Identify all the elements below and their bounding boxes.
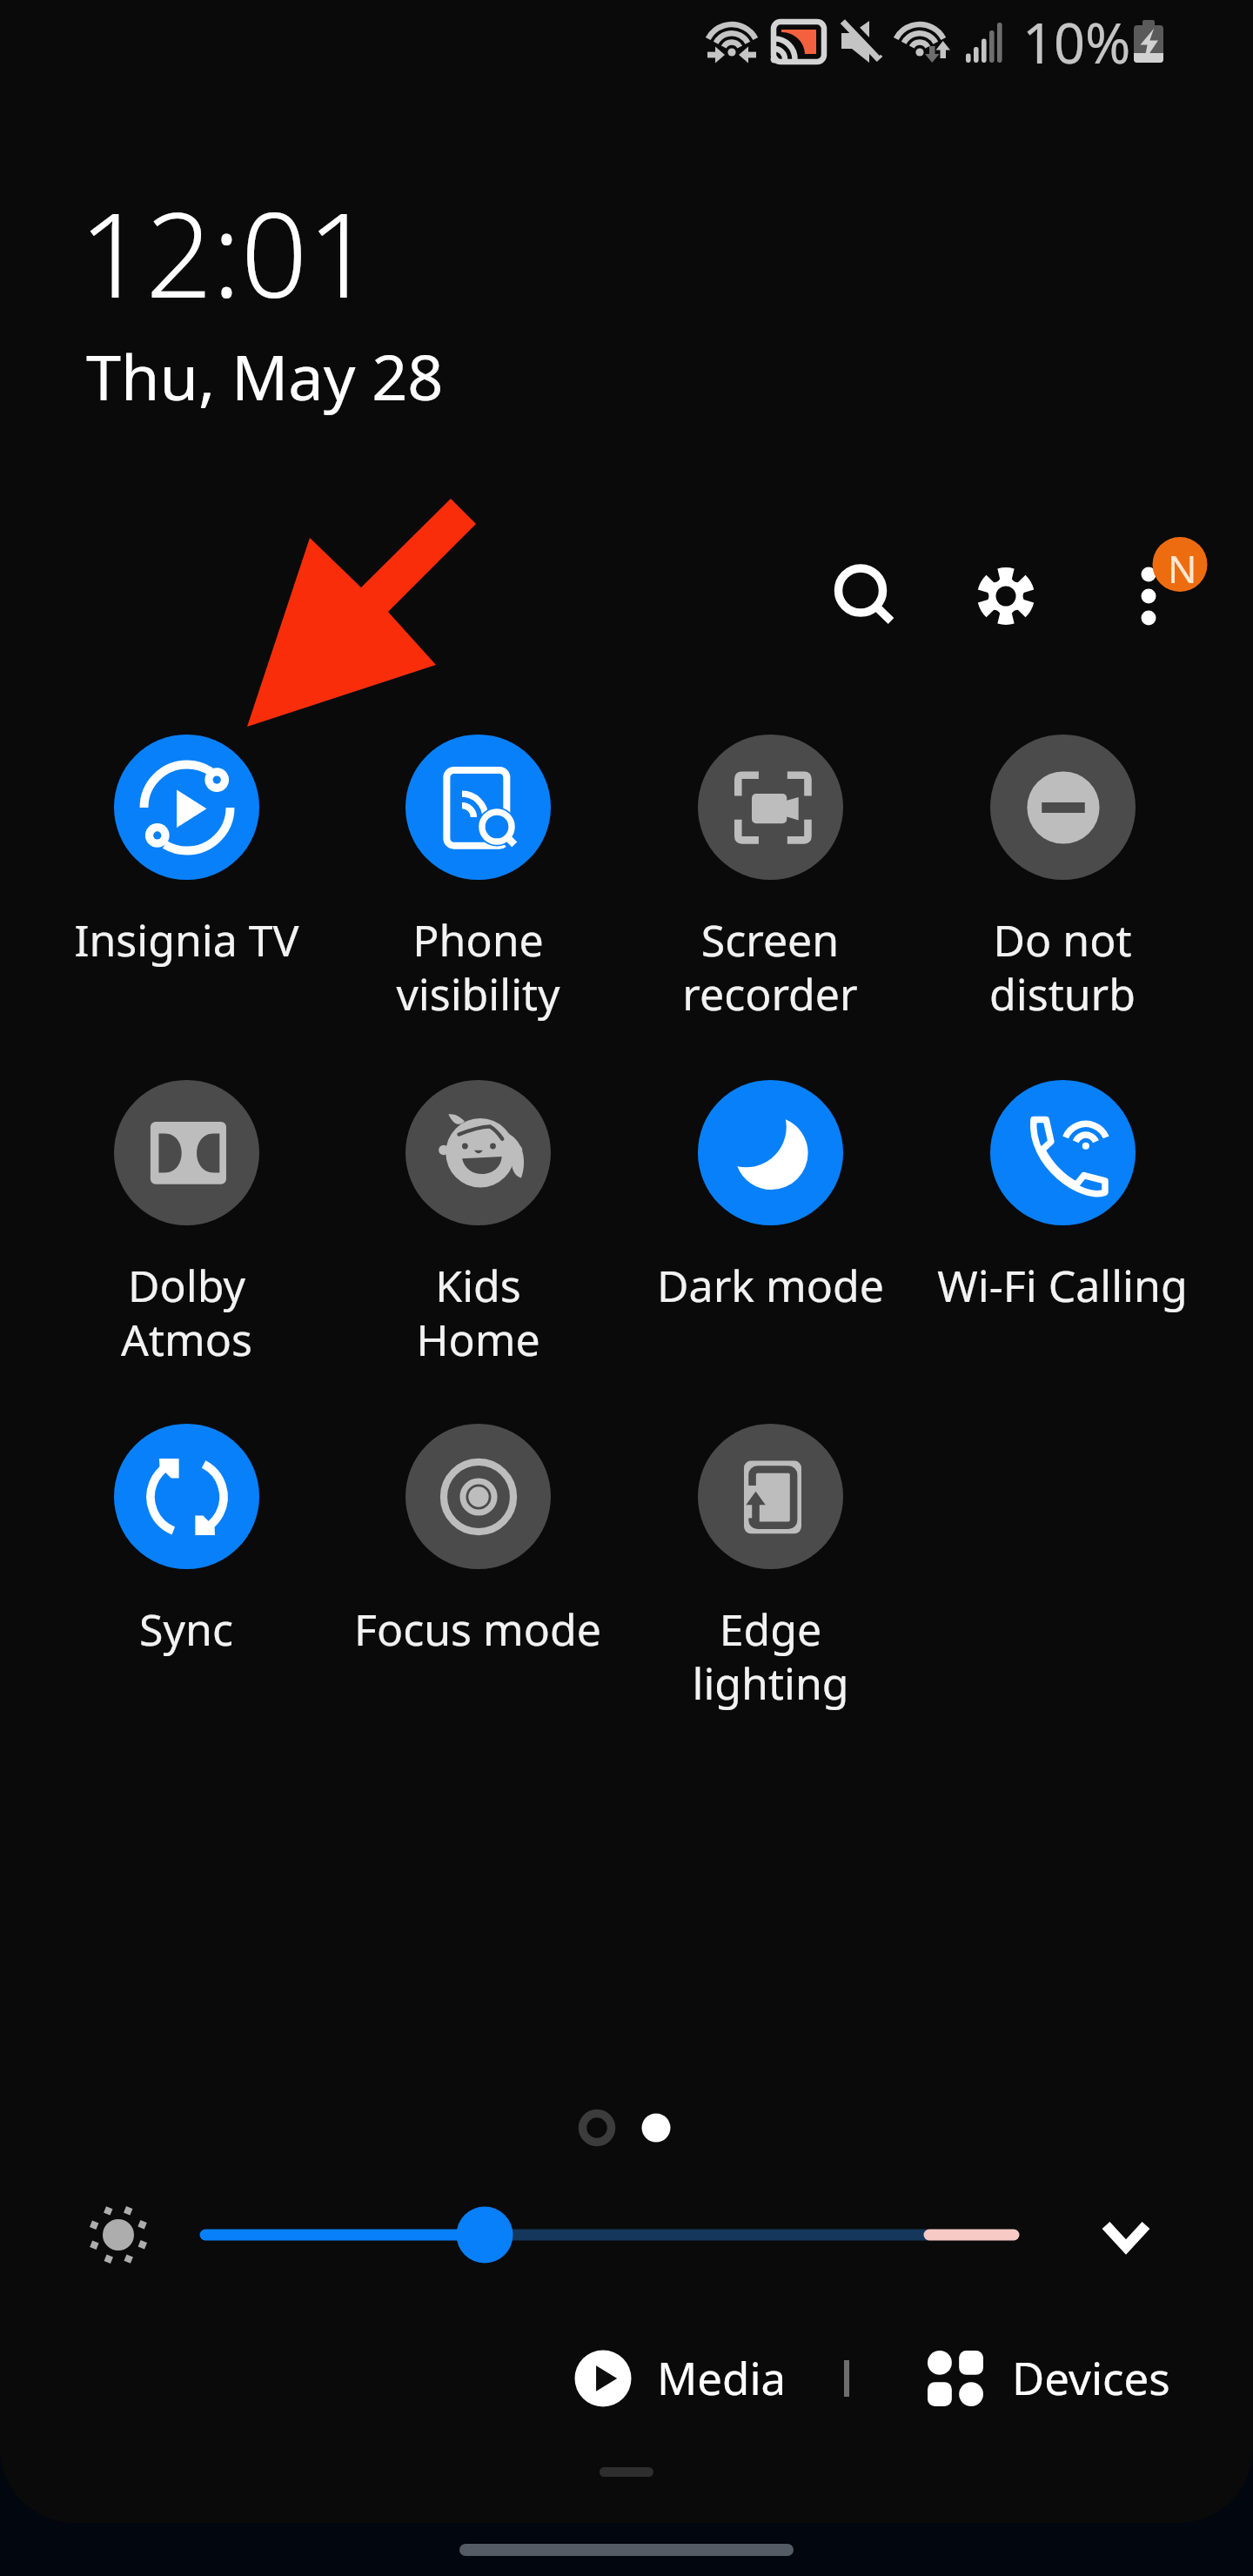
button[interactable]: More options: [1096, 513, 1236, 653]
staticText: N: [1168, 542, 1197, 594]
button[interactable]: Screen recorder: [625, 735, 915, 1023]
staticText: Media: [657, 2347, 787, 2407]
staticText: Thu, May 28: [86, 333, 444, 419]
staticText: Screen recorder: [682, 910, 858, 1023]
button[interactable]: Edge lighting: [625, 1424, 915, 1713]
button[interactable]: Phone visibility: [332, 735, 623, 1023]
button[interactable]: Do not disturb: [917, 735, 1208, 1023]
staticText: Kids Home: [416, 1256, 540, 1369]
button[interactable]: Devices: [928, 2345, 1170, 2412]
staticText: Insignia TV: [74, 910, 299, 969]
staticText: Devices: [1012, 2347, 1170, 2407]
button[interactable]: Dolby Atmos: [41, 1080, 332, 1369]
staticText: 10%: [1022, 5, 1131, 80]
button[interactable]: Insignia TV: [41, 735, 332, 969]
staticText: Do not disturb: [989, 910, 1136, 1023]
staticText: Focus mode: [354, 1600, 601, 1659]
staticText: Phone visibility: [396, 910, 560, 1023]
staticText: Dark mode: [657, 1256, 884, 1315]
button[interactable]: Focus mode: [332, 1424, 623, 1659]
button[interactable]: Kids Home: [332, 1080, 623, 1369]
staticText: Dolby Atmos: [121, 1256, 252, 1369]
button[interactable]: Search: [798, 529, 920, 651]
staticText: 12:01: [79, 173, 374, 332]
button[interactable]: Settings: [945, 535, 1067, 657]
button[interactable]: Dark mode: [625, 1080, 915, 1315]
button[interactable]: Wi-Fi Calling: [917, 1080, 1208, 1315]
button[interactable]: Media: [574, 2345, 787, 2412]
staticText: Sync: [139, 1600, 233, 1659]
staticText: Wi-Fi Calling: [937, 1256, 1188, 1315]
button[interactable]: Sync: [41, 1424, 332, 1659]
staticText: Edge lighting: [692, 1600, 849, 1713]
